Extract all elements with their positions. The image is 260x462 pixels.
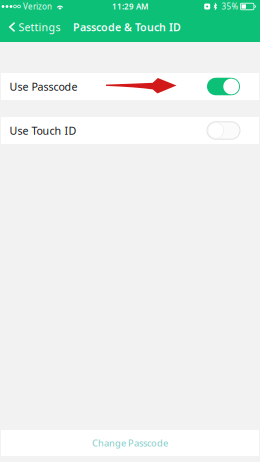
staticText: Use Touch ID xyxy=(9,123,76,138)
staticText: 11:29 AM xyxy=(112,1,148,12)
button[interactable]: Change Passcode xyxy=(1,430,259,456)
staticText: Settings xyxy=(18,20,60,34)
staticText: Passcode & Touch ID xyxy=(73,20,181,34)
button[interactable]: Use Passcode xyxy=(1,73,259,100)
staticText: Change Passcode xyxy=(92,437,168,449)
staticText: Verizon xyxy=(23,1,52,12)
staticText: 35% xyxy=(221,1,238,12)
button[interactable]: Settings xyxy=(0,15,66,39)
button[interactable]: Use Touch ID xyxy=(1,117,259,144)
staticText: Use Passcode xyxy=(9,79,77,94)
